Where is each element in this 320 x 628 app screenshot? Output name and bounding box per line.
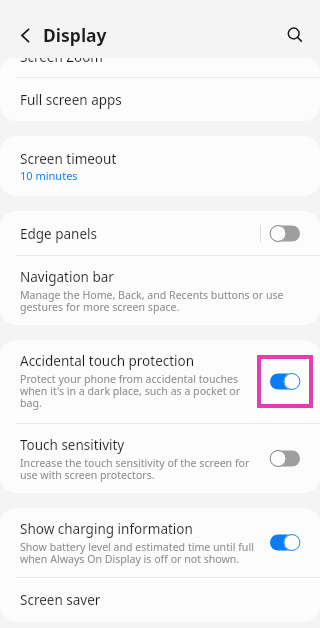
button[interactable]: Edge panels: [0, 211, 320, 255]
staticText: Edge panels: [20, 225, 98, 243]
button[interactable]: Accidental touch protection: [270, 373, 300, 390]
button[interactable]: Back: [6, 16, 42, 52]
staticText: Accidental touch protection: [20, 352, 195, 370]
staticText: Screen saver: [20, 591, 101, 609]
staticText: Touch sensitivity: [20, 436, 125, 454]
staticText: Manage the Home, Back, and Recents butto…: [20, 288, 290, 314]
staticText: 10 minutes: [20, 168, 78, 183]
staticText: Navigation bar: [20, 268, 114, 286]
button[interactable]: Screen saver: [0, 578, 320, 622]
staticText: Increase the touch sensitivity of the sc…: [20, 456, 252, 482]
staticText: Full screen apps: [20, 91, 122, 109]
staticText: Screen timeout: [20, 150, 117, 168]
staticText: Show charging information: [20, 520, 193, 538]
button[interactable]: Show charging information: [0, 508, 320, 577]
button[interactable]: Show charging information: [270, 534, 300, 551]
button[interactable]: Touch sensitivity: [270, 450, 300, 467]
staticText: Screen Zoom: [20, 48, 103, 62]
button[interactable]: Edge panels: [270, 225, 300, 242]
button[interactable]: Accidental touch protection: [0, 340, 320, 423]
staticText: Show battery level and estimated time un…: [20, 540, 270, 566]
button[interactable]: Navigation bar: [0, 256, 320, 325]
staticText: Protect your phone from accidental touch…: [20, 372, 250, 410]
staticText: Display: [43, 23, 107, 47]
button[interactable]: Search: [276, 16, 312, 52]
button[interactable]: Screen timeout: [0, 136, 320, 196]
button[interactable]: Touch sensitivity: [0, 424, 320, 493]
button[interactable]: Full screen apps: [0, 78, 320, 121]
